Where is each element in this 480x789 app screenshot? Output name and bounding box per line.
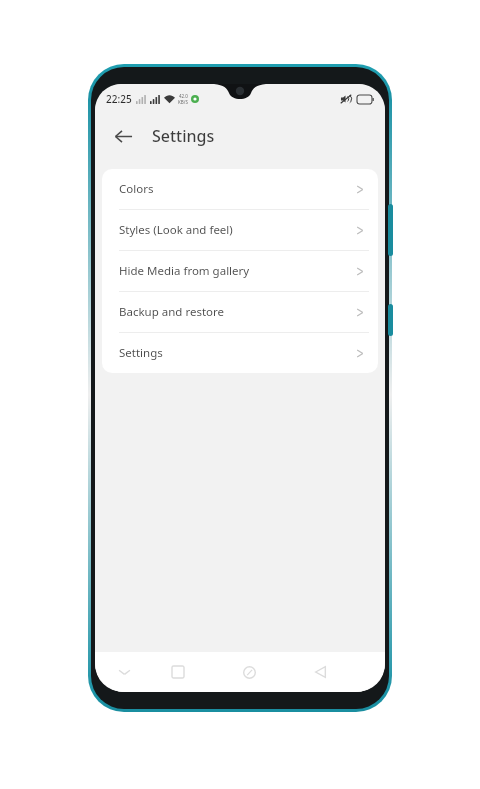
button[interactable]: Settings [102, 333, 378, 373]
button[interactable]: Colors [102, 169, 378, 209]
staticText: KB/S [178, 99, 188, 105]
staticText: Backup and restore [119, 304, 225, 320]
button[interactable]: Hide Media from gallery [102, 251, 378, 291]
button[interactable]: Styles (Look and feel) [102, 210, 378, 250]
button[interactable]: Recent apps [159, 655, 197, 689]
staticText: Hide Media from gallery [119, 263, 250, 279]
staticText: Settings [119, 345, 163, 361]
staticText: 42.0 [179, 93, 188, 99]
button[interactable]: Home [230, 655, 268, 689]
button[interactable]: Back [106, 119, 140, 153]
staticText: Settings [152, 125, 215, 147]
button[interactable]: Backup and restore [102, 292, 378, 332]
staticText: 22:25 [106, 92, 132, 106]
button[interactable]: Back [301, 655, 339, 689]
staticText: Styles (Look and feel) [119, 222, 233, 238]
button[interactable]: Hide keyboard [105, 655, 143, 689]
staticText: Colors [119, 181, 154, 197]
